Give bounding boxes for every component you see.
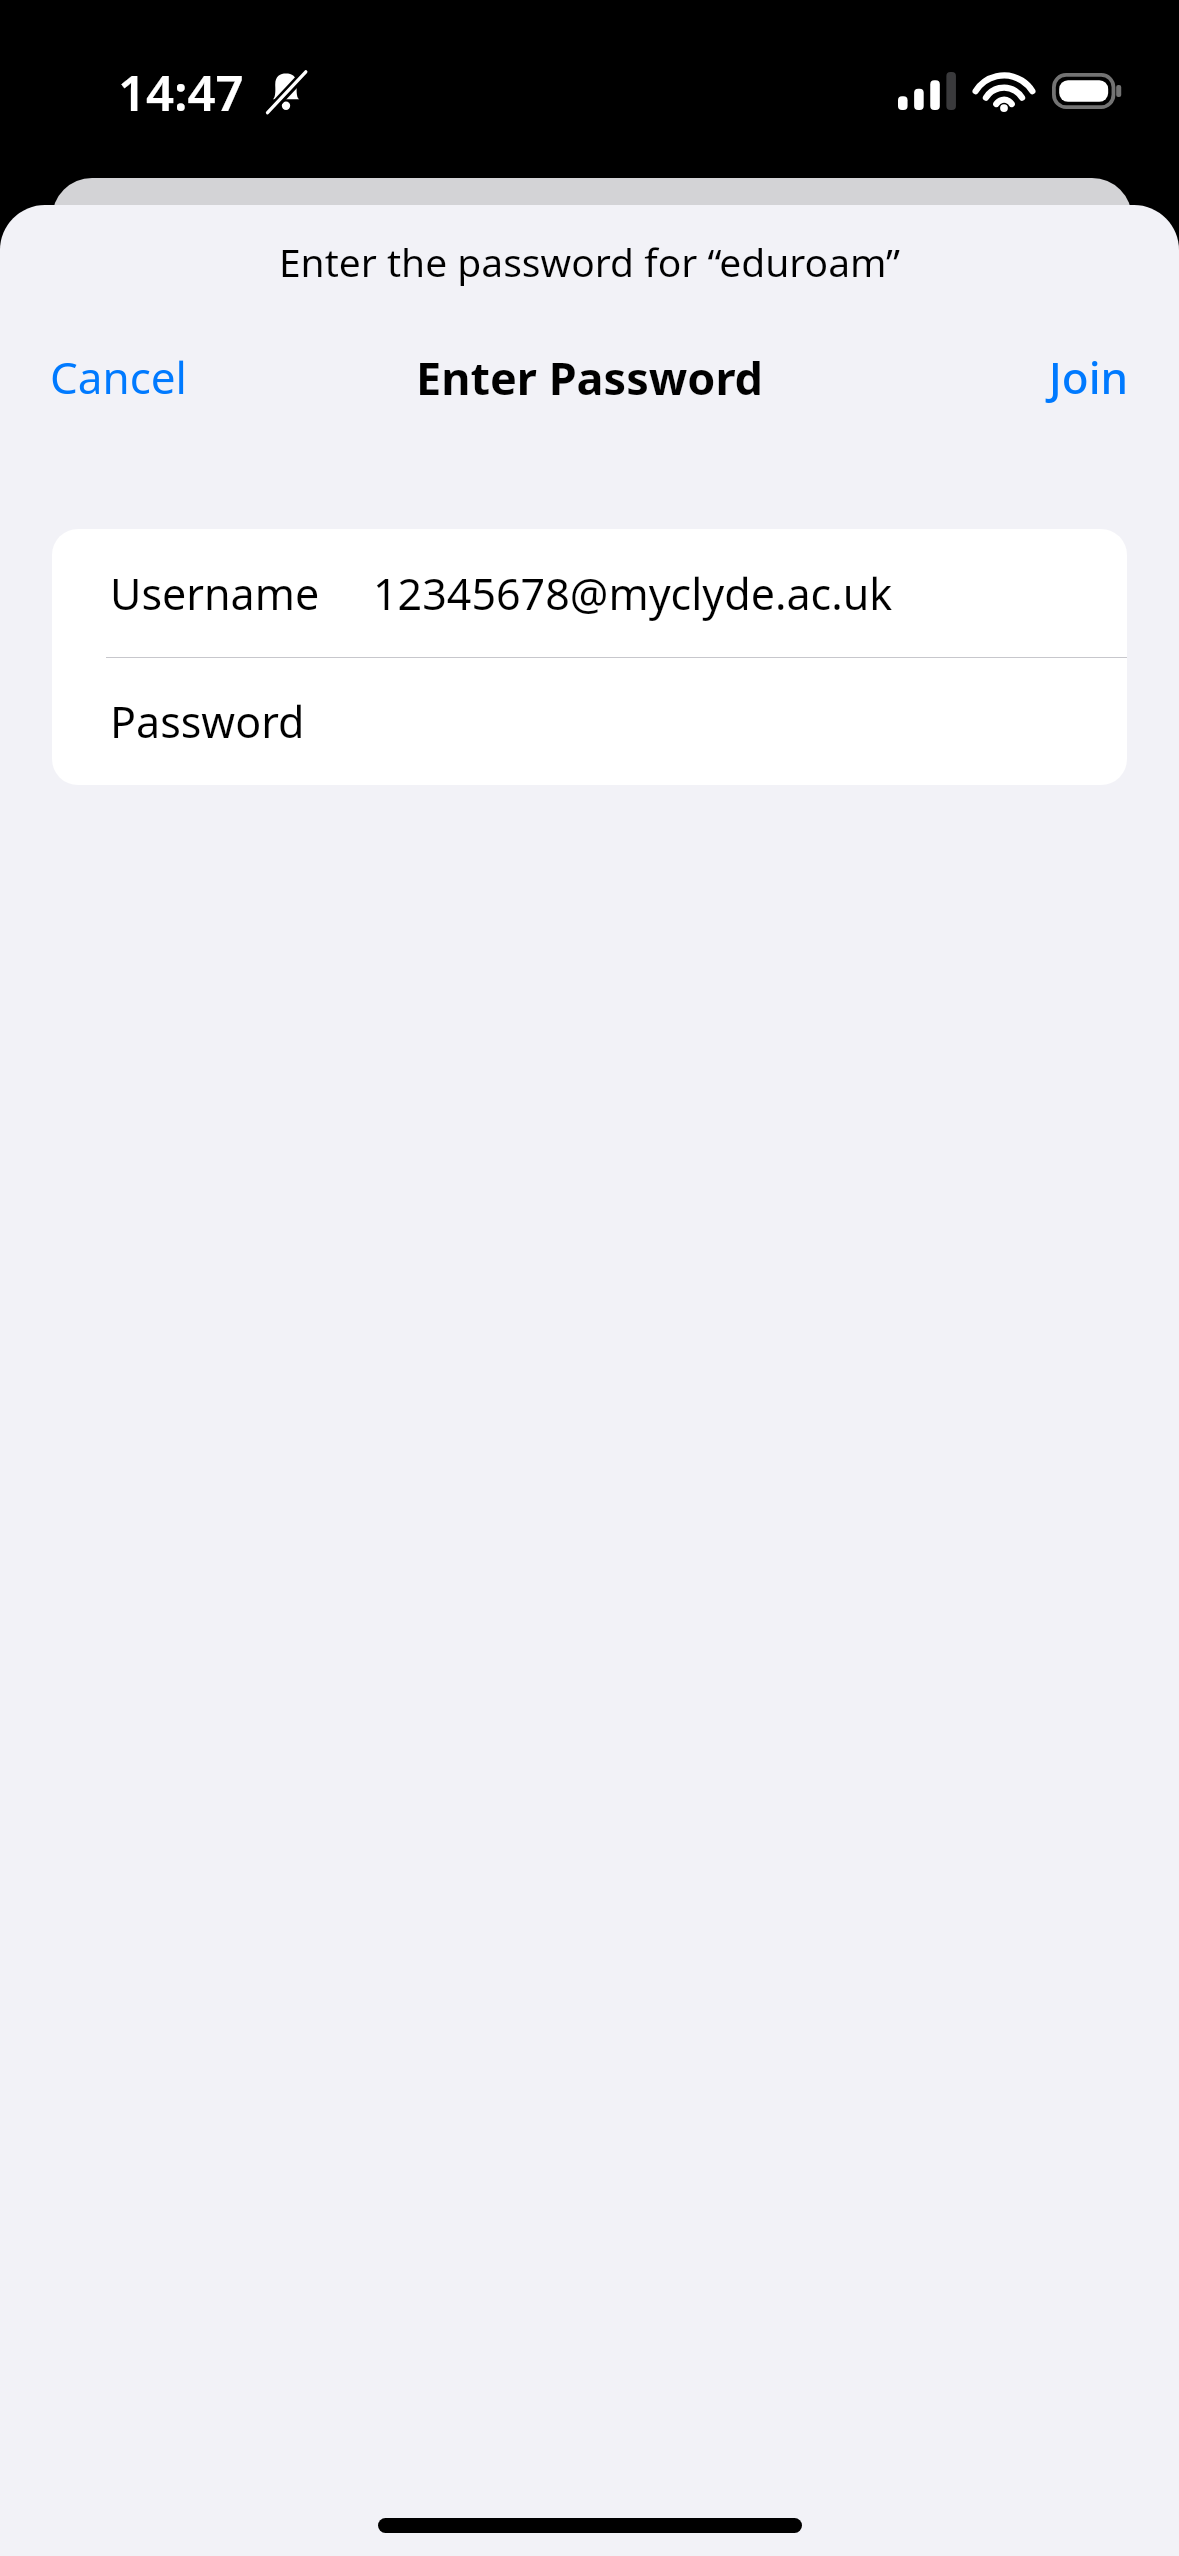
staticText: Enter Password xyxy=(416,347,764,408)
button[interactable]: Join xyxy=(1029,337,1179,417)
staticText: Username xyxy=(110,564,320,623)
staticText: Join xyxy=(1049,347,1129,407)
button[interactable]: Password xyxy=(52,658,1127,785)
staticText: Enter the password for “eduroam” xyxy=(0,235,1179,288)
staticText: Cancel xyxy=(50,347,187,407)
button[interactable]: Username xyxy=(52,529,1127,657)
staticText: 14:47 xyxy=(118,59,244,126)
staticText: 12345678@myclyde.ac.uk xyxy=(373,564,893,623)
other: Silent mode xyxy=(264,69,308,115)
button[interactable]: Cancel xyxy=(0,337,207,417)
staticText: Password xyxy=(110,692,305,751)
